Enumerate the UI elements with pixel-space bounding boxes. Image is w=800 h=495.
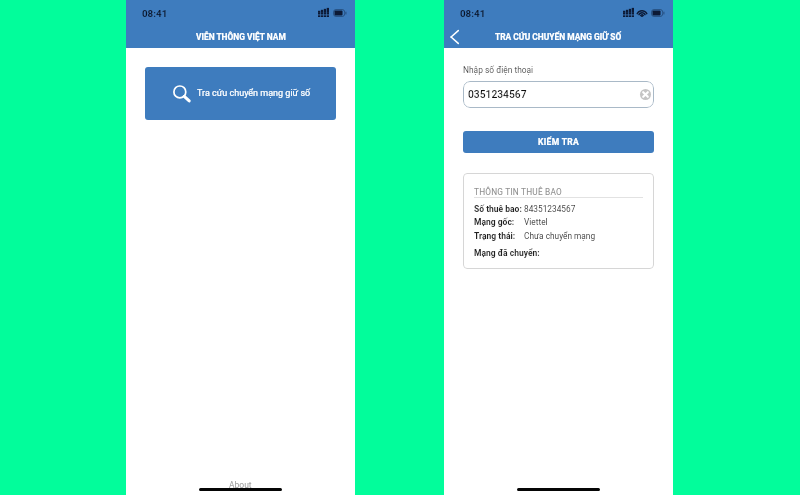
staticText: Tra cứu chuyển mạng giữ số: [197, 88, 311, 99]
button[interactable]: Tra cứu chuyển mạng giữ số: [145, 67, 336, 120]
staticText: KIỂM TRA: [538, 137, 580, 147]
staticText: About: [229, 480, 252, 490]
staticText: Trạng thái:: [474, 231, 516, 241]
button[interactable]: Clear text: [639, 88, 652, 101]
button[interactable]: About: [215, 475, 266, 495]
button[interactable]: Back: [444, 26, 465, 47]
staticText: VIỄN THÔNG VIỆT NAM: [196, 32, 286, 42]
button[interactable]: KIỂM TRA: [463, 131, 654, 153]
staticText: TRA CỨU CHUYỂN MẠNG GIỮ SỐ: [495, 32, 622, 42]
staticText: 0351234567: [468, 88, 527, 100]
staticText: 08:41: [460, 8, 486, 19]
staticText: Chưa chuyển mạng: [524, 231, 596, 241]
staticText: Nhập số điện thoại: [463, 65, 534, 75]
staticText: Mạng đã chuyển:: [474, 248, 540, 258]
staticText: Số thuê bao:: [474, 204, 522, 214]
staticText: THÔNG TIN THUÊ BAO: [474, 187, 562, 197]
staticText: Mạng gốc:: [474, 217, 515, 227]
button[interactable]: 0351234567: [463, 81, 654, 108]
staticText: Viettel: [524, 217, 548, 227]
staticText: 08:41: [142, 8, 168, 19]
staticText: 84351234567: [524, 204, 576, 214]
